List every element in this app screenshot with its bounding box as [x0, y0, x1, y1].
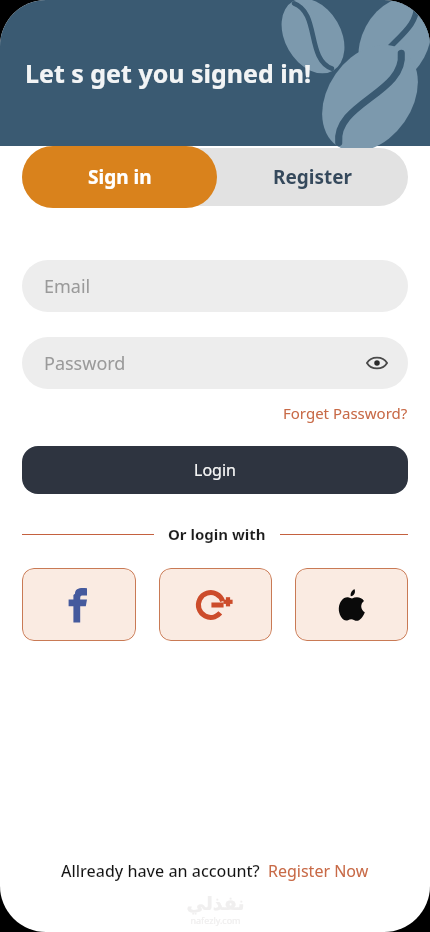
staticText: Forget Password?	[283, 403, 408, 423]
staticText: Register Now	[268, 860, 369, 882]
staticText: nafezly.com	[190, 914, 241, 926]
staticText: Password	[44, 351, 126, 376]
staticText: Allready have an account?	[61, 860, 260, 882]
button[interactable]: Sign in with Apple	[295, 568, 408, 641]
button[interactable]: Show password	[362, 348, 392, 378]
staticText: Login	[194, 459, 236, 481]
button[interactable]: Forget Password?	[283, 403, 408, 423]
staticText: Sign in	[88, 164, 152, 190]
button[interactable]: Sign in with Google	[159, 568, 272, 641]
staticText: Register	[273, 164, 353, 190]
staticText: Email	[44, 274, 91, 299]
button[interactable]: Sign in with Facebook	[22, 568, 136, 641]
button[interactable]: Register	[217, 148, 408, 206]
button[interactable]: Email	[22, 260, 408, 312]
button[interactable]: Password	[22, 337, 408, 389]
staticText: Let s get you signed in!	[25, 56, 312, 90]
staticText: نفذلي	[186, 892, 245, 914]
staticText: Or login with	[168, 524, 266, 544]
button[interactable]: Login	[22, 446, 408, 494]
button[interactable]: Sign in	[22, 146, 217, 208]
button[interactable]: Register Now	[268, 860, 369, 882]
